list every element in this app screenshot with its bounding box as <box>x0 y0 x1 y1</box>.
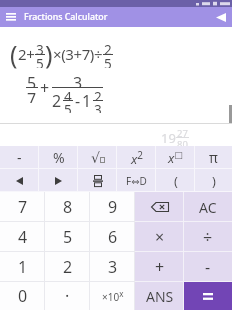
staticText: 3 <box>108 256 118 278</box>
staticText: 3 <box>94 101 102 113</box>
button[interactable] <box>135 192 184 222</box>
button[interactable]: 2 <box>45 252 90 282</box>
staticText: 7 <box>18 196 28 218</box>
staticText: ÷ <box>203 226 213 248</box>
button[interactable]: F⇔D <box>117 169 156 192</box>
staticText: 8 <box>63 196 73 218</box>
staticText: 3 <box>73 72 83 87</box>
staticText: x2 <box>131 148 143 168</box>
staticText: 3 <box>36 41 44 54</box>
staticText: - <box>17 148 22 167</box>
staticText: ×10x <box>102 288 124 304</box>
button[interactable]: - <box>184 252 232 282</box>
button[interactable]: 0 <box>0 282 45 310</box>
staticText: 2 <box>94 88 102 100</box>
staticText: 2+ <box>18 44 35 64</box>
staticText: Fractions Calculator <box>24 11 108 23</box>
button[interactable]: ÷ <box>184 222 232 252</box>
staticText: 5 <box>64 101 72 113</box>
staticText: 5 <box>63 226 73 248</box>
button[interactable]: - <box>0 146 39 169</box>
button[interactable]: x□ <box>156 146 195 169</box>
button[interactable]: 8 <box>45 192 90 222</box>
button[interactable]: · <box>45 282 90 310</box>
staticText: √ <box>91 150 100 166</box>
staticText: - <box>75 90 80 112</box>
button[interactable]: √ <box>78 146 117 169</box>
button[interactable] <box>0 7 21 27</box>
button[interactable]: + <box>135 252 184 282</box>
button[interactable]: ×10x <box>90 282 135 310</box>
staticText: 2 <box>63 256 73 278</box>
button[interactable]: 3 <box>90 252 135 282</box>
staticText: 2 <box>104 41 112 54</box>
staticText: 9 <box>108 196 118 218</box>
staticText: 0 <box>18 285 28 307</box>
staticText: 7 <box>27 88 37 103</box>
staticText: ×(3+7)÷ <box>53 44 103 64</box>
button[interactable]: ANS <box>135 282 184 310</box>
button[interactable]: 4 <box>0 222 45 252</box>
staticText: 5 <box>36 55 44 68</box>
button[interactable]: 6 <box>90 222 135 252</box>
button[interactable] <box>78 169 117 192</box>
staticText: 5 <box>27 72 37 87</box>
button[interactable]: ( <box>156 169 195 192</box>
staticText: 4 <box>64 88 72 100</box>
button[interactable]: AC <box>184 192 232 222</box>
button[interactable] <box>39 169 78 192</box>
staticText: ) <box>212 172 216 190</box>
button[interactable] <box>0 169 39 192</box>
staticText: 5 <box>104 55 112 68</box>
staticText: ) <box>45 37 53 71</box>
button[interactable]: x2 <box>117 146 156 169</box>
staticText: - <box>205 256 211 278</box>
button[interactable] <box>184 282 232 310</box>
staticText: 19 <box>161 129 176 147</box>
staticText: ( <box>10 37 18 71</box>
staticText: + <box>40 77 50 99</box>
staticText: π <box>209 149 218 167</box>
staticText: 4 <box>18 226 28 248</box>
staticText: 2 <box>52 90 61 112</box>
staticText: x□ <box>168 149 183 167</box>
button[interactable] <box>210 7 232 27</box>
button[interactable]: 7 <box>0 192 45 222</box>
staticText: 6 <box>108 226 118 248</box>
button[interactable]: π <box>195 146 232 169</box>
button[interactable]: 9 <box>90 192 135 222</box>
staticText: F⇔D <box>126 174 147 188</box>
button[interactable]: % <box>39 146 78 169</box>
staticText: · <box>65 285 70 307</box>
staticText: 27 <box>177 127 188 137</box>
staticText: 80 <box>177 138 188 148</box>
staticText: 1 <box>82 90 91 112</box>
button[interactable]: × <box>135 222 184 252</box>
button[interactable]: 5 <box>45 222 90 252</box>
staticText: 1 <box>18 256 28 278</box>
staticText: % <box>53 148 65 167</box>
staticText: ANS <box>146 287 174 306</box>
button[interactable]: 1 <box>0 252 45 282</box>
staticText: + <box>155 256 165 278</box>
staticText: ( <box>174 172 178 190</box>
staticText: × <box>155 226 165 248</box>
button[interactable]: ) <box>195 169 232 192</box>
staticText: AC <box>199 198 217 217</box>
